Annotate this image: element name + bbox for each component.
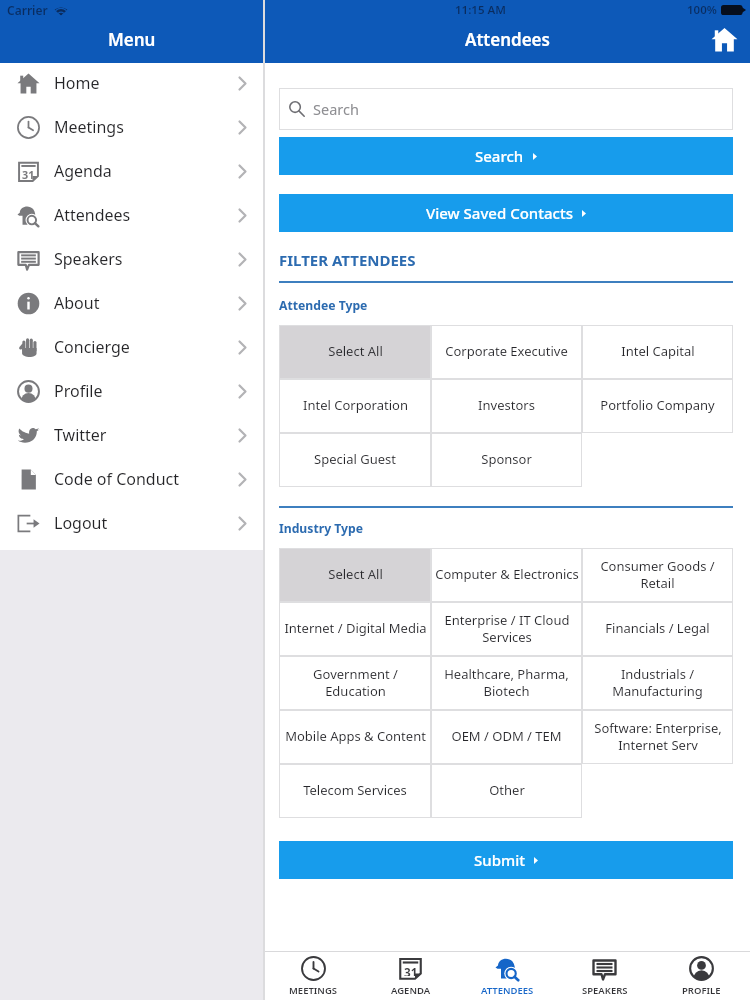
staticText: Select All (328, 342, 383, 360)
button[interactable]: Profile (0, 369, 263, 413)
staticText: Concierge (54, 336, 130, 358)
staticText: Search (475, 146, 524, 166)
staticText: Corporate Executive (445, 342, 568, 360)
staticText: Carrier (7, 2, 48, 18)
button[interactable]: Internet / Digital Media (279, 602, 431, 656)
button[interactable]: Search (279, 88, 733, 130)
button[interactable]: Investors (431, 379, 582, 433)
staticText: Speakers (54, 248, 123, 270)
staticText: Agenda (54, 160, 112, 182)
button[interactable]: Home (706, 21, 742, 57)
staticText: OEM / ODM / TEM (451, 727, 562, 745)
staticText: Special Guest (314, 450, 396, 468)
button[interactable]: Submit (279, 841, 733, 879)
staticText: Industrials / Manufacturing (612, 665, 703, 700)
staticText: View Saved Contacts (426, 203, 573, 223)
staticText: Financials / Legal (605, 619, 710, 637)
button[interactable]: Computer & Electronics (431, 548, 582, 602)
staticText: Investors (478, 396, 535, 414)
staticText: Intel Capital (621, 342, 695, 360)
staticText: AGENDA (391, 984, 431, 997)
staticText: Attendees (465, 28, 550, 51)
staticText: 31 (22, 167, 35, 179)
button[interactable]: Software: Enterprise, Internet Serv (582, 710, 733, 764)
staticText: 100% (687, 2, 717, 18)
staticText: Government / Education (313, 665, 398, 700)
staticText: Other (489, 781, 525, 799)
button[interactable]: Consumer Goods / Retail (582, 548, 733, 602)
staticText: 31 (404, 964, 418, 976)
staticText: Home (54, 72, 100, 94)
button[interactable]: Speakers (0, 237, 263, 281)
staticText: 11:15 AM (455, 2, 506, 18)
button[interactable]: PROFILE (653, 952, 750, 1000)
button[interactable]: Mobile Apps & Content (279, 710, 431, 764)
button[interactable]: Code of Conduct (0, 457, 263, 501)
button[interactable]: Portfolio Company (582, 379, 733, 433)
staticText: Submit (474, 850, 525, 870)
staticText: Profile (54, 380, 103, 402)
staticText: Intel Corporation (303, 396, 408, 414)
button[interactable]: Home (0, 61, 263, 105)
staticText: Select All (328, 565, 383, 583)
staticText: Menu (108, 28, 156, 51)
button[interactable]: SPEAKERS (556, 952, 653, 1000)
button[interactable]: Logout (0, 501, 263, 545)
button[interactable]: Enterprise / IT Cloud Services (431, 602, 582, 656)
staticText: Attendees (54, 204, 131, 226)
button[interactable]: Concierge (0, 325, 263, 369)
staticText: Telecom Services (303, 781, 407, 799)
button[interactable]: 31 (0, 149, 263, 193)
staticText: Portfolio Company (600, 396, 715, 414)
staticText: Logout (54, 512, 108, 534)
button[interactable]: Twitter (0, 413, 263, 457)
button[interactable]: Intel Capital (582, 325, 733, 379)
staticText: Meetings (54, 116, 124, 138)
staticText: Internet / Digital Media (284, 619, 427, 637)
button[interactable]: OEM / ODM / TEM (431, 710, 582, 764)
button[interactable]: Industrials / Manufacturing (582, 656, 733, 710)
staticText: Code of Conduct (54, 468, 180, 490)
button[interactable]: Meetings (0, 105, 263, 149)
button[interactable]: Corporate Executive (431, 325, 582, 379)
staticText: Mobile Apps & Content (285, 727, 426, 745)
staticText: Consumer Goods / Retail (600, 557, 715, 592)
button[interactable]: 31 (362, 952, 459, 1000)
button[interactable]: Special Guest (279, 433, 431, 487)
staticText: Software: Enterprise, Internet Serv (594, 719, 722, 754)
staticText: Industry Type (279, 520, 363, 537)
staticText: FILTER ATTENDEES (279, 250, 416, 270)
staticText: Computer & Electronics (435, 565, 579, 583)
button[interactable]: Healthcare, Pharma, Biotech (431, 656, 582, 710)
staticText: ATTENDEES (481, 984, 534, 997)
button[interactable]: Government / Education (279, 656, 431, 710)
staticText: SPEAKERS (582, 984, 628, 997)
button[interactable]: Sponsor (431, 433, 582, 487)
button[interactable]: ATTENDEES (459, 952, 556, 1000)
staticText: MEETINGS (289, 984, 338, 997)
button[interactable]: Telecom Services (279, 764, 431, 818)
button[interactable]: Search (279, 137, 733, 175)
button[interactable]: View Saved Contacts (279, 194, 733, 232)
staticText: PROFILE (682, 984, 721, 997)
button[interactable]: Intel Corporation (279, 379, 431, 433)
button[interactable]: Other (431, 764, 582, 818)
staticText: Twitter (54, 424, 107, 446)
staticText: About (54, 292, 100, 314)
button[interactable]: Select All (279, 325, 431, 379)
staticText: Enterprise / IT Cloud Services (444, 611, 570, 646)
button[interactable]: Attendees (0, 193, 263, 237)
staticText: Attendee Type (279, 297, 368, 314)
staticText: Healthcare, Pharma, Biotech (444, 665, 569, 700)
staticText: Search (313, 99, 359, 119)
button[interactable]: About (0, 281, 263, 325)
button[interactable]: MEETINGS (265, 952, 362, 1000)
button[interactable]: Financials / Legal (582, 602, 733, 656)
button[interactable]: Select All (279, 548, 431, 602)
staticText: Sponsor (481, 450, 532, 468)
